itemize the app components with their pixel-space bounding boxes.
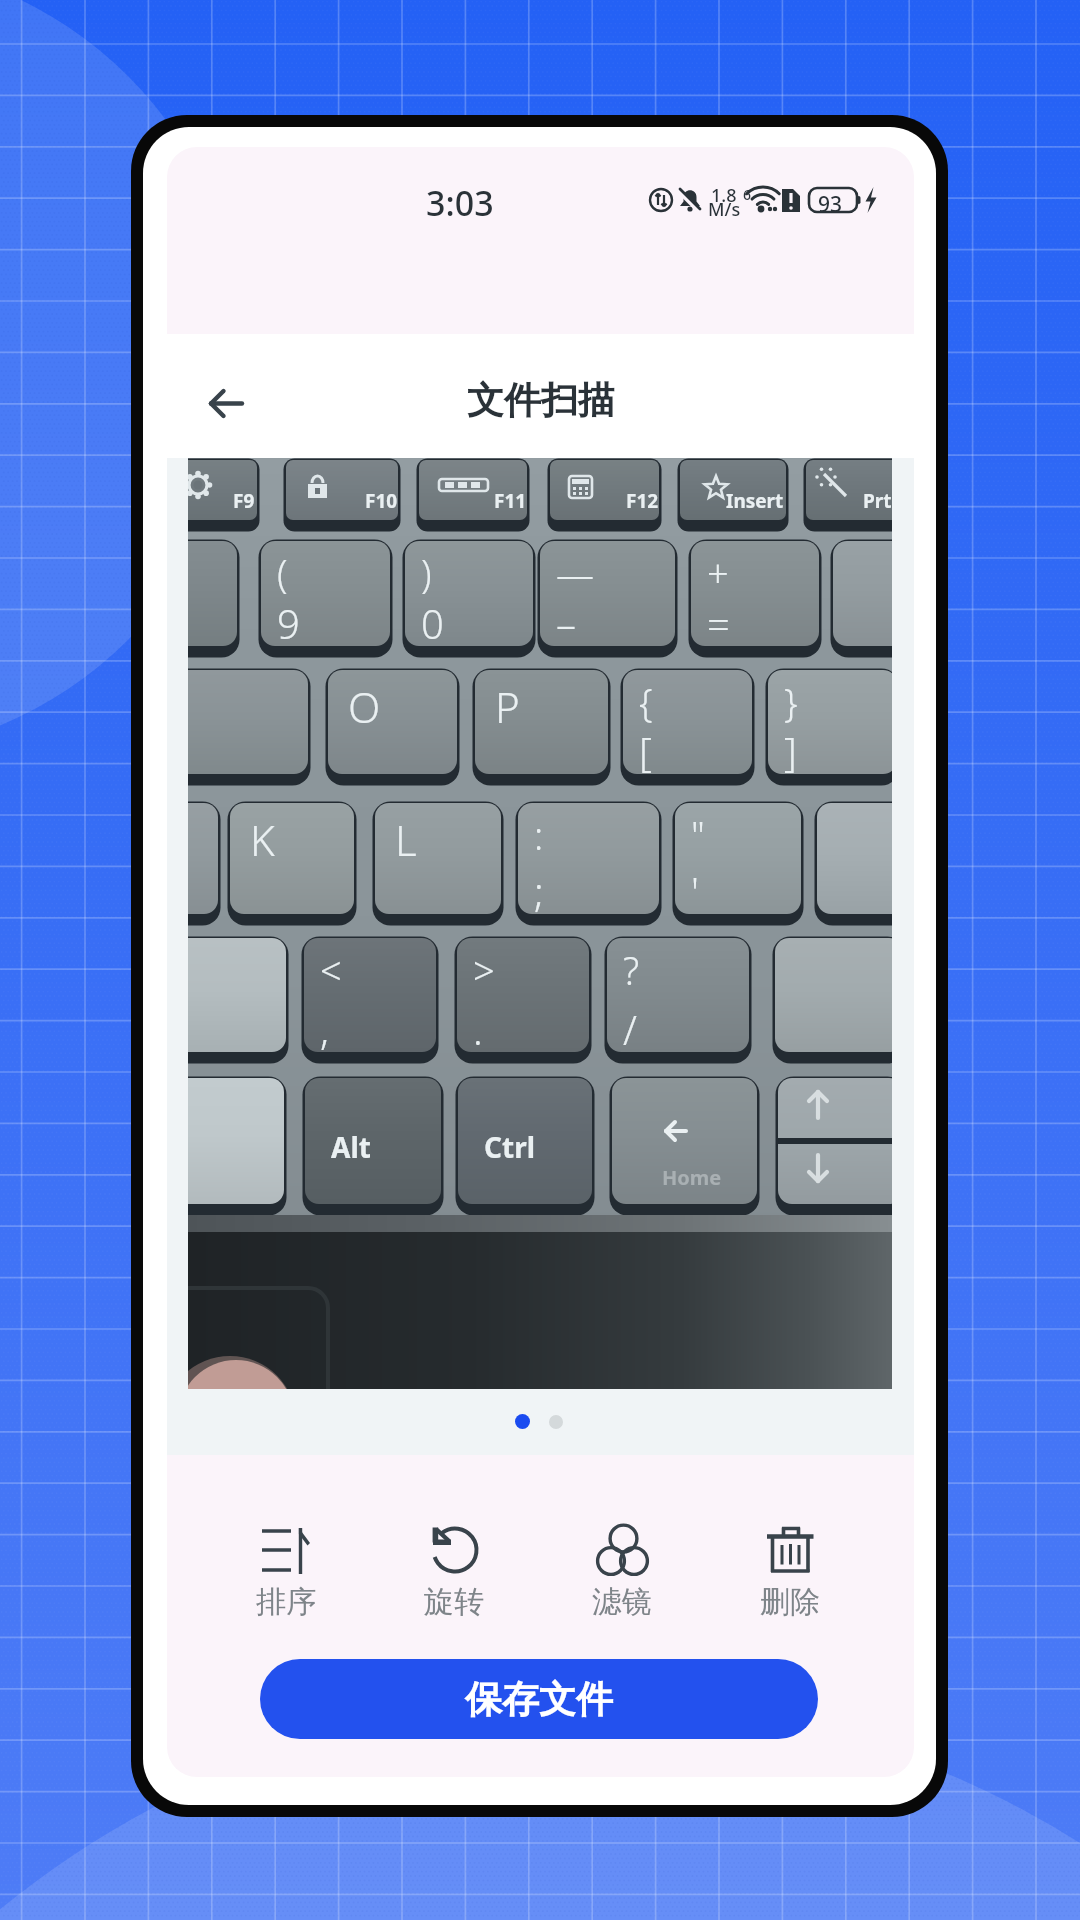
staticText: 6: [743, 185, 752, 204]
staticText: <: [320, 944, 342, 996]
staticText: –: [556, 596, 576, 650]
staticText: ]: [784, 724, 797, 778]
staticText: 保存文件: [465, 1676, 613, 1723]
staticText: —: [556, 547, 595, 599]
staticText: M/s: [708, 197, 741, 222]
staticText: ): [421, 547, 432, 599]
staticText: L: [395, 811, 417, 868]
staticText: 1.8: [711, 183, 737, 208]
staticText: Home: [662, 1164, 722, 1191]
staticText: F12: [626, 488, 659, 514]
staticText: 旋转: [424, 1583, 484, 1621]
staticText: O: [348, 678, 381, 735]
staticText: +: [707, 547, 729, 599]
staticText: 93: [818, 190, 843, 219]
staticText: PrtSc: [863, 488, 892, 514]
staticText: P: [495, 678, 520, 735]
staticText: ": [691, 809, 705, 861]
staticText: =: [707, 596, 730, 650]
staticText: 删除: [760, 1583, 820, 1621]
staticText: /: [623, 1002, 637, 1056]
button[interactable]: 旋转: [370, 1519, 538, 1621]
button[interactable]: Back: [188, 369, 248, 429]
staticText: 3:03: [426, 180, 494, 226]
staticText: F9: [233, 488, 255, 514]
staticText: 文件扫描: [467, 377, 615, 424]
staticText: >: [473, 944, 495, 996]
staticText: 排序: [256, 1583, 316, 1621]
staticText: Ctrl: [484, 1128, 535, 1166]
staticText: (: [277, 547, 288, 599]
button[interactable]: 滤镜: [538, 1519, 706, 1621]
staticText: ': [691, 864, 699, 918]
staticText: :: [534, 809, 544, 861]
button[interactable]: 保存文件: [260, 1659, 818, 1739]
staticText: }: [784, 676, 798, 728]
staticText: 滤镜: [592, 1583, 652, 1621]
staticText: 0: [421, 596, 444, 650]
staticText: K: [250, 811, 275, 868]
staticText: ;: [534, 864, 544, 918]
staticText: ?: [623, 944, 640, 996]
button[interactable]: 排序: [202, 1519, 370, 1621]
staticText: Insert: [726, 488, 784, 514]
staticText: [: [639, 724, 652, 778]
staticText: .: [473, 1002, 483, 1056]
staticText: F11: [494, 488, 527, 514]
staticText: F10: [365, 488, 398, 514]
staticText: ,: [320, 1002, 329, 1056]
staticText: 9: [277, 596, 300, 650]
button[interactable]: 删除: [706, 1519, 874, 1621]
staticText: Alt: [331, 1128, 371, 1166]
staticText: {: [639, 676, 653, 728]
